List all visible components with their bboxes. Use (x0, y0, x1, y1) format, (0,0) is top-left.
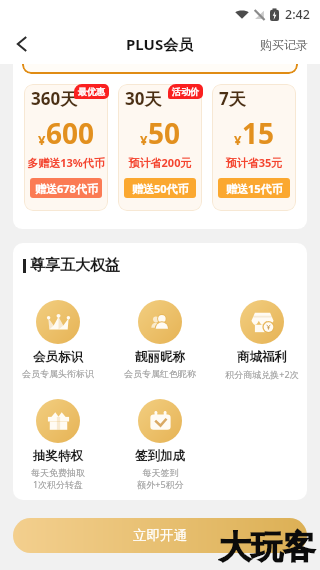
staticText: ¥ (38, 131, 46, 149)
staticText: 2:42 (285, 6, 310, 23)
button[interactable]: 立即开通 (13, 518, 307, 553)
staticText: 赠送678代币 (35, 181, 98, 196)
staticText: 预计省200元 (118, 155, 202, 170)
staticText: 50 (148, 114, 181, 152)
staticText: ¥ (140, 131, 148, 149)
staticText: 最优惠 (78, 86, 105, 97)
button[interactable]: 30天 (118, 84, 202, 211)
staticText: 15 (242, 114, 275, 152)
button[interactable]: 7天 (212, 84, 296, 211)
staticText: 30天 (125, 87, 162, 110)
staticText: 每天签到 额外+5积分 (137, 467, 184, 491)
staticText: 多赠送13%代币 (24, 155, 108, 170)
button[interactable]: 靓丽昵称 (109, 300, 211, 379)
staticText: 尊享五大权益 (30, 256, 120, 275)
staticText: 靓丽昵称 (135, 349, 185, 365)
button[interactable]: 购买记录 (258, 33, 310, 56)
staticText: 360天 (31, 87, 78, 110)
staticText: 600 (46, 114, 95, 152)
staticText: 会员专属红色昵称 (124, 368, 196, 379)
staticText: 活动价 (172, 86, 199, 97)
staticText: 赠送50代币 (132, 181, 189, 196)
staticText: PLUS会员 (126, 34, 194, 54)
staticText: 购买记录 (260, 37, 308, 52)
staticText: 每天免费抽取 1次积分转盘 (31, 467, 85, 491)
button[interactable]: 抽奖特权 (13, 399, 109, 491)
staticText: 抽奖特权 (33, 448, 83, 464)
staticText: 赠送15代币 (226, 181, 283, 196)
button[interactable]: 商城福利 (211, 300, 307, 380)
staticText: 7天 (219, 87, 246, 110)
staticText: 立即开通 (133, 527, 187, 544)
button[interactable]: 360天 (24, 84, 108, 211)
staticText: 会员标识 (33, 349, 83, 365)
staticText: 签到加成 (135, 448, 185, 464)
button[interactable]: 会员标识 (13, 300, 109, 379)
staticText: ¥ (234, 131, 242, 149)
button[interactable]: Back (6, 28, 38, 60)
staticText: 大玩客 (219, 527, 315, 567)
staticText: 预计省35元 (212, 155, 296, 170)
staticText: 商城福利 (237, 349, 287, 365)
staticText: 会员专属头衔标识 (22, 368, 94, 379)
staticText: 积分商城兑换+2次 (225, 368, 299, 380)
button[interactable]: 签到加成 (109, 399, 211, 491)
